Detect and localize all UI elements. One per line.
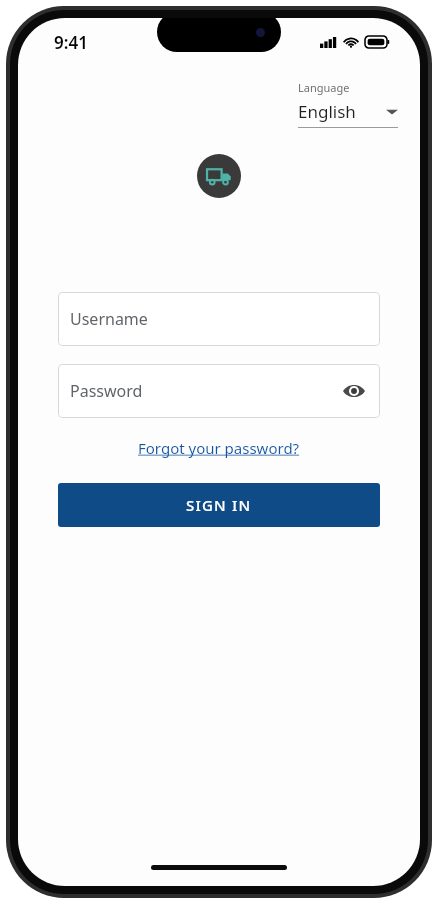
staticText: English xyxy=(298,100,356,123)
button[interactable]: Username xyxy=(58,292,380,346)
staticText: 9:41 xyxy=(54,31,88,54)
button[interactable]: Language xyxy=(298,80,398,128)
staticText: Language xyxy=(298,80,350,95)
staticText: Username xyxy=(70,308,148,330)
staticText: Password xyxy=(70,380,143,402)
button[interactable]: Show password xyxy=(340,377,368,405)
button[interactable]: SIGN IN xyxy=(58,483,380,527)
button[interactable]: Password xyxy=(58,364,380,418)
staticText: SIGN IN xyxy=(186,495,252,515)
button[interactable]: Forgot your password? xyxy=(134,434,304,462)
staticText: Forgot your password? xyxy=(138,438,300,458)
